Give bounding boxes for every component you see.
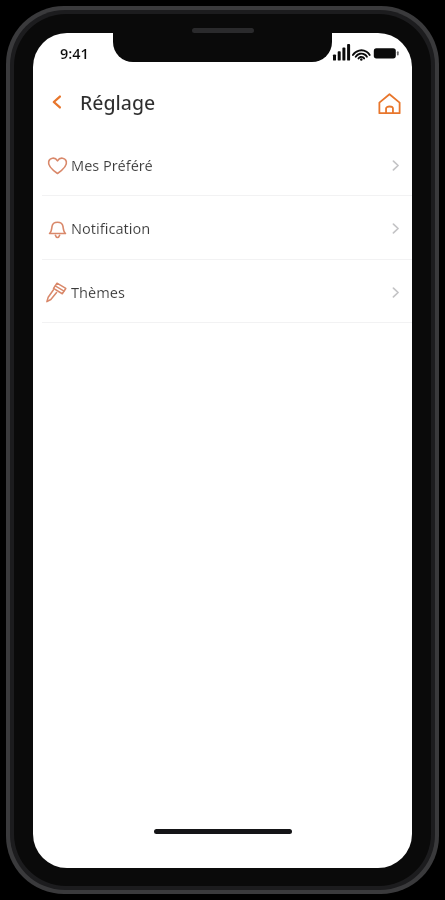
staticText: Réglage xyxy=(80,89,156,116)
staticText: Mes Préféré xyxy=(71,155,153,175)
staticText: Notification xyxy=(71,218,151,238)
staticText: Thèmes xyxy=(71,282,125,302)
button[interactable]: Home xyxy=(371,85,407,121)
button[interactable]: Notification xyxy=(33,196,412,259)
button[interactable]: Thèmes xyxy=(33,260,412,323)
button[interactable]: Back xyxy=(41,86,73,118)
button[interactable]: Mes Préféré xyxy=(33,133,412,196)
staticText: 9:41 xyxy=(60,43,89,63)
